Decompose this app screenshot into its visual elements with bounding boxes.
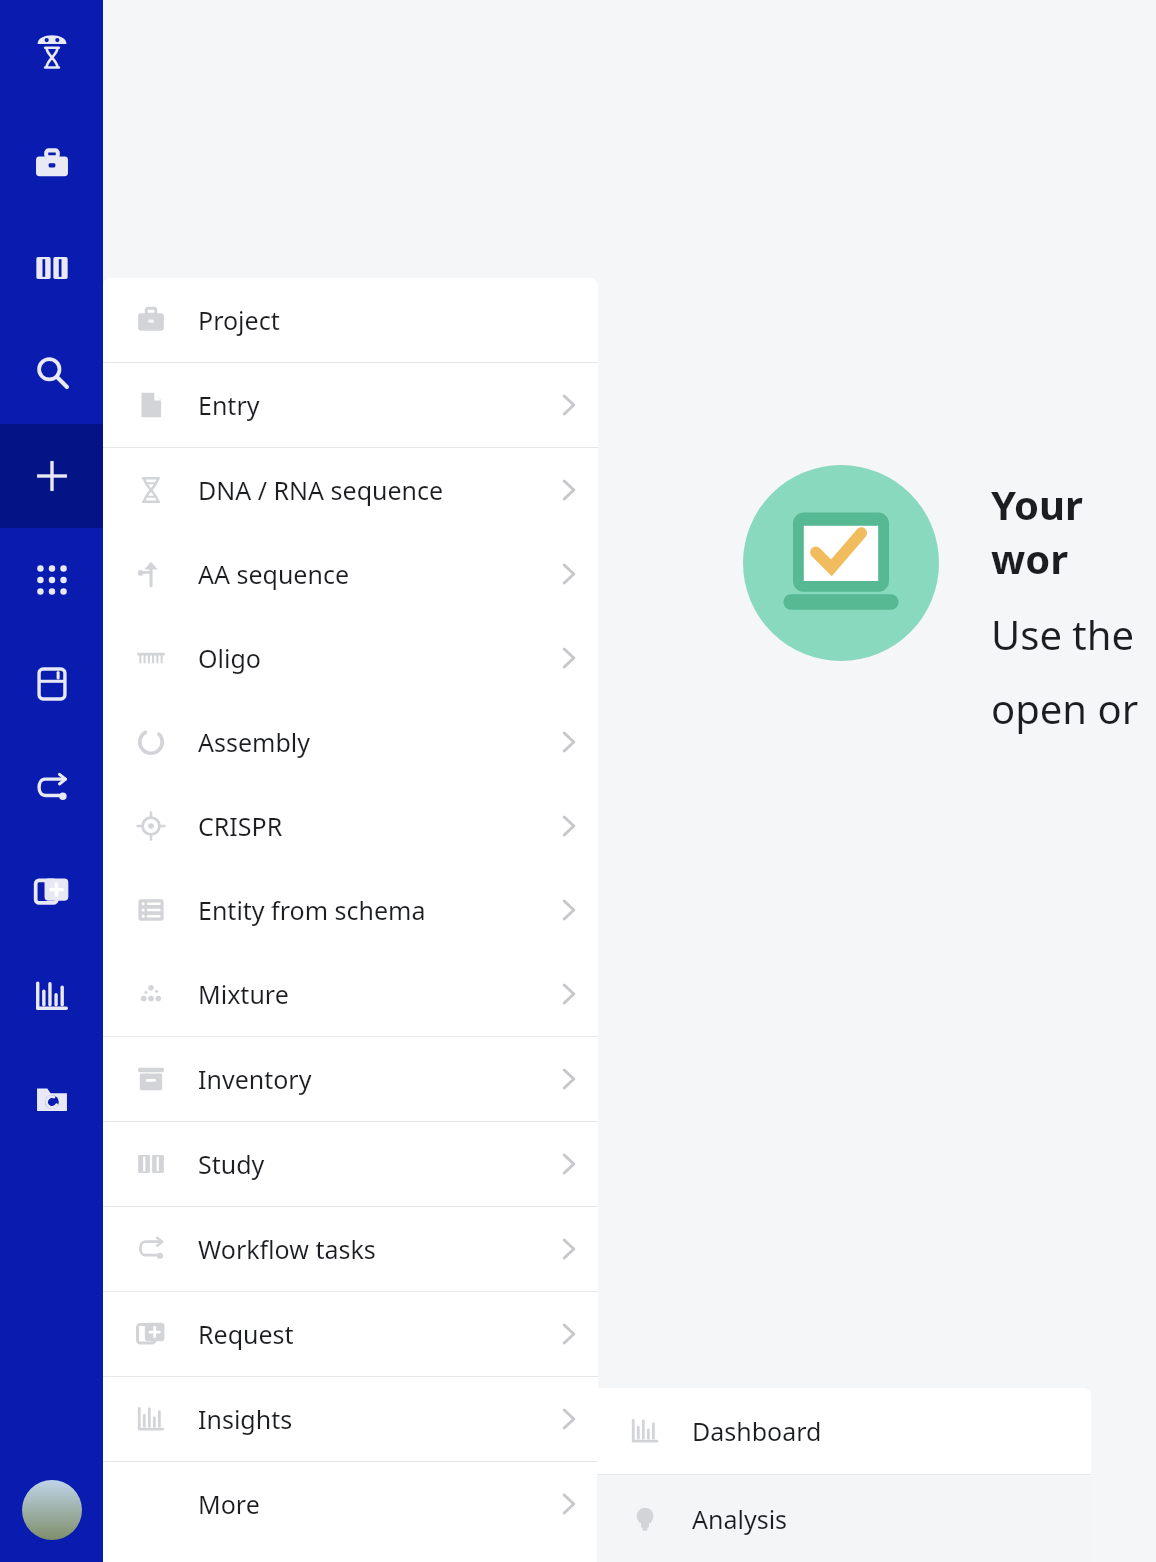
button[interactable]: Projects xyxy=(0,112,103,216)
button[interactable]: Sync xyxy=(0,1048,103,1152)
staticText: Inventory xyxy=(198,1062,312,1096)
staticText: Mixture xyxy=(198,977,289,1011)
staticText: DNA / RNA sequence xyxy=(198,473,444,507)
button[interactable]: Study xyxy=(103,1122,598,1206)
staticText: Workflow tasks xyxy=(198,1232,376,1266)
button[interactable]: Analysis xyxy=(597,1475,1091,1562)
staticText: Project xyxy=(198,303,280,337)
button[interactable]: More xyxy=(103,1462,598,1546)
button[interactable]: Mixture xyxy=(103,952,598,1036)
button[interactable]: Inventory xyxy=(103,1037,598,1121)
staticText: Your wor xyxy=(991,477,1156,585)
staticText: Entity from schema xyxy=(198,893,426,927)
button[interactable]: Account xyxy=(22,1480,82,1540)
button[interactable]: Create new xyxy=(0,424,103,528)
staticText: Entry xyxy=(198,388,260,422)
staticText: More xyxy=(198,1487,260,1521)
staticText: Dashboard xyxy=(692,1414,822,1448)
button[interactable]: Assembly xyxy=(103,700,598,784)
staticText: Study xyxy=(198,1147,265,1181)
staticText: Analysis xyxy=(692,1502,788,1536)
staticText: Use the xyxy=(991,607,1135,661)
button[interactable]: Apps xyxy=(0,528,103,632)
button[interactable]: Request xyxy=(103,1292,598,1376)
button[interactable]: CRISPR xyxy=(103,784,598,868)
button[interactable]: Benchling home xyxy=(0,12,103,88)
button[interactable]: Dashboard xyxy=(597,1388,1091,1474)
staticText: Request xyxy=(198,1317,294,1351)
button[interactable]: Workflows xyxy=(0,736,103,840)
button[interactable]: Oligo xyxy=(103,616,598,700)
staticText: Insights xyxy=(198,1402,293,1436)
button[interactable]: Entity from schema xyxy=(103,868,598,952)
button[interactable]: Insights xyxy=(0,944,103,1048)
button[interactable]: DNA / RNA sequence xyxy=(103,448,598,532)
button[interactable]: Insights xyxy=(103,1377,598,1461)
button[interactable]: Entry xyxy=(103,363,598,447)
button[interactable]: AA sequence xyxy=(103,532,598,616)
staticText: open or xyxy=(991,681,1139,735)
button[interactable]: Workflow tasks xyxy=(103,1207,598,1291)
button[interactable]: Project xyxy=(103,278,598,362)
staticText: Assembly xyxy=(198,725,310,759)
staticText: CRISPR xyxy=(198,809,283,843)
button[interactable]: Requests xyxy=(0,840,103,944)
button[interactable]: Inventory xyxy=(0,632,103,736)
staticText: Oligo xyxy=(198,641,261,675)
staticText: AA sequence xyxy=(198,557,350,591)
button[interactable]: Search xyxy=(0,320,103,424)
button[interactable]: Notebook xyxy=(0,216,103,320)
